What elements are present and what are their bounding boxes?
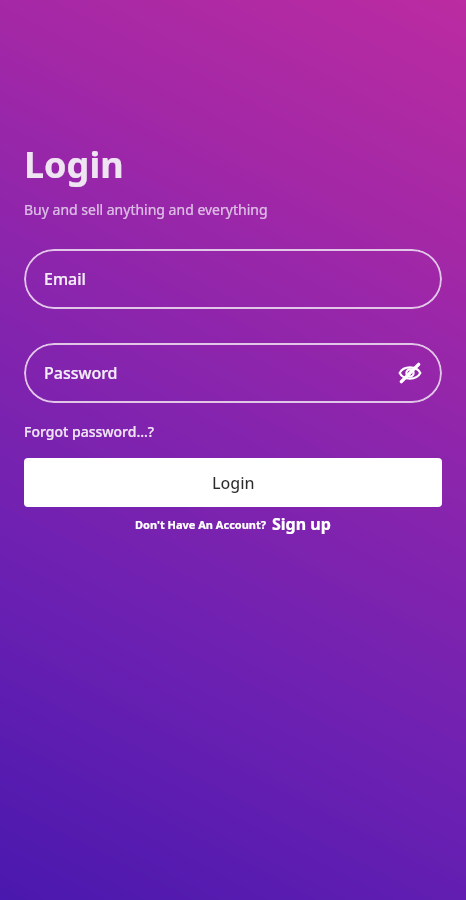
- staticText: Forgot password...?: [24, 422, 155, 441]
- button[interactable]: Email: [24, 249, 442, 309]
- staticText: Sign up: [272, 513, 331, 535]
- staticText: Password: [44, 362, 118, 384]
- staticText: Buy and sell anything and everything: [24, 200, 268, 219]
- button[interactable]: Password: [24, 343, 442, 403]
- button[interactable]: Sign up: [272, 513, 331, 535]
- button[interactable]: Forgot password...?: [24, 422, 155, 441]
- staticText: Don't Have An Account?: [135, 517, 267, 532]
- button[interactable]: Toggle password visibility: [392, 355, 428, 391]
- staticText: Email: [44, 268, 86, 290]
- staticText: Login: [24, 140, 124, 189]
- staticText: Login: [212, 472, 255, 494]
- button[interactable]: Login: [24, 458, 442, 507]
